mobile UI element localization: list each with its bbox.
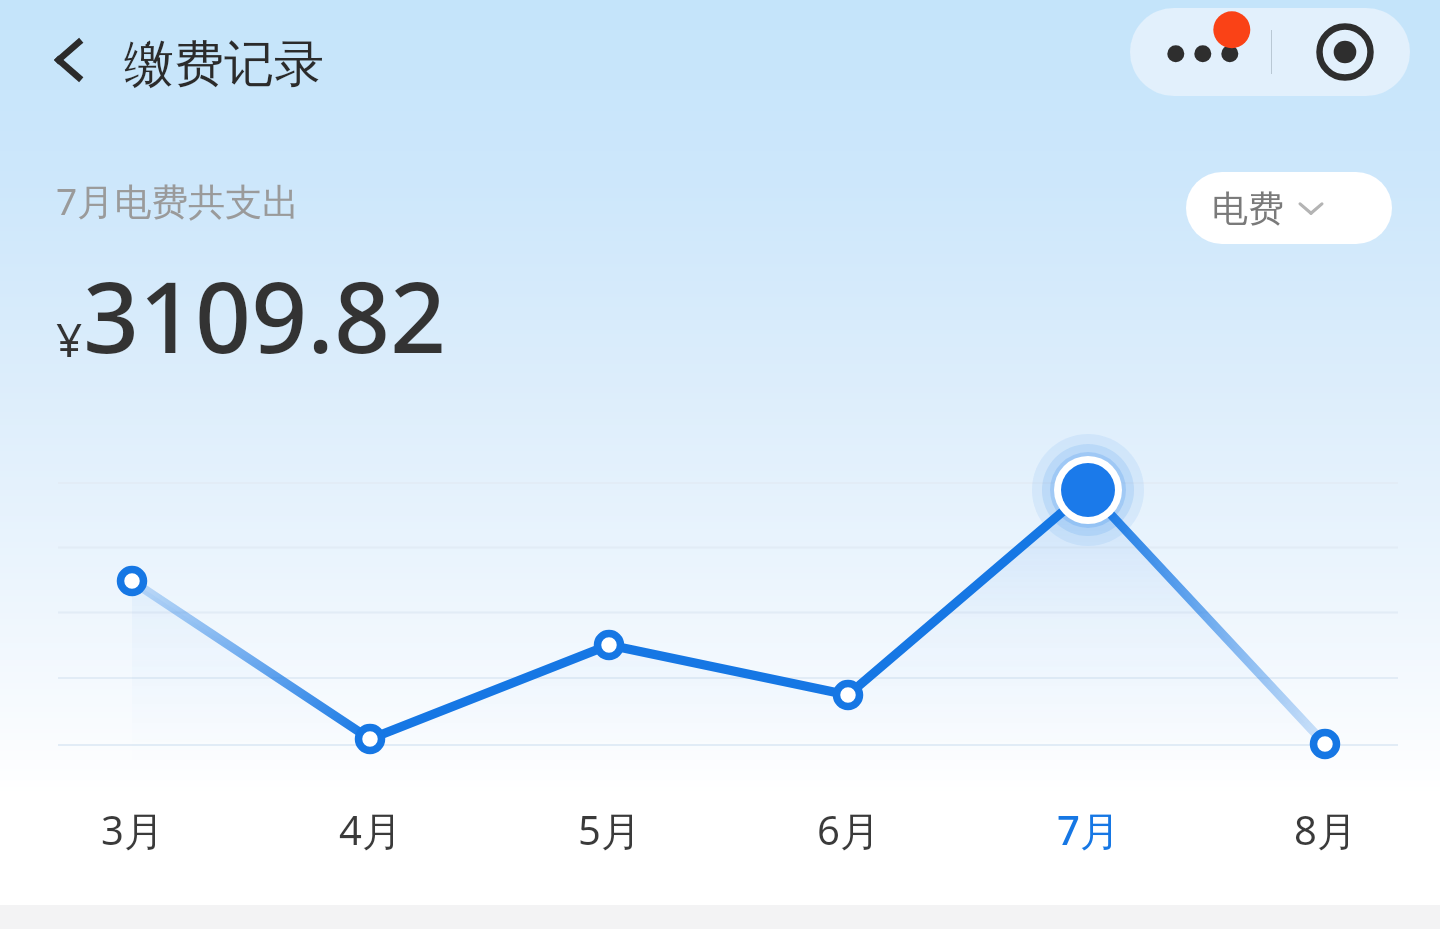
button[interactable]: 4月 (300, 798, 440, 860)
button[interactable]: More (1130, 8, 1270, 96)
staticText: 5月 (578, 802, 641, 857)
staticText: 4月 (339, 802, 402, 857)
button[interactable]: 6月 (778, 798, 918, 860)
button[interactable]: 8月 (1255, 798, 1395, 860)
staticText: 7月 (1057, 802, 1120, 857)
staticText: 7月电费共支出 (56, 175, 300, 226)
staticText: 电费 (1212, 186, 1284, 231)
staticText: 8月 (1294, 802, 1357, 857)
staticText: 3109.82 (83, 248, 446, 381)
staticText: 缴费记录 (124, 33, 324, 96)
button[interactable]: 5月 (539, 798, 679, 860)
button[interactable]: 7月 (1018, 798, 1158, 860)
button[interactable]: 电费 (1186, 172, 1392, 244)
button[interactable]: 3月 (62, 798, 202, 860)
staticText: 3月 (101, 802, 164, 857)
staticText: ¥ (56, 308, 83, 371)
button[interactable]: Back (28, 18, 112, 102)
button[interactable]: Close mini program (1280, 8, 1410, 96)
staticText: 6月 (817, 802, 880, 857)
